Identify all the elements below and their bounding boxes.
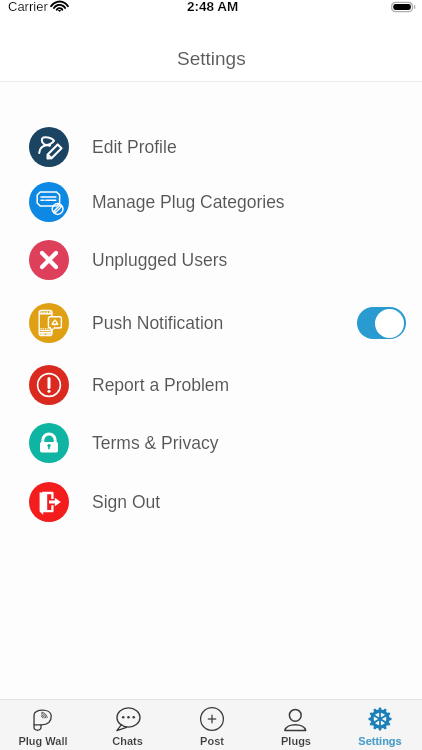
button[interactable]: Sign Out bbox=[0, 480, 422, 524]
staticText: Settings bbox=[177, 48, 246, 69]
staticText: Plugs bbox=[281, 735, 311, 747]
staticText: Settings bbox=[358, 735, 402, 747]
button[interactable]: Unplugged Users bbox=[0, 238, 422, 282]
staticText: Unplugged Users bbox=[92, 250, 228, 270]
button[interactable]: Push Notification bbox=[0, 301, 422, 345]
staticText: 2:48 AM bbox=[187, 0, 239, 14]
staticText: Manage Plug Categories bbox=[92, 192, 285, 212]
button[interactable]: Chats bbox=[85, 700, 170, 750]
button[interactable]: Edit Profile bbox=[0, 125, 422, 169]
staticText: Carrier bbox=[8, 0, 48, 14]
button[interactable]: Manage Plug Categories bbox=[0, 180, 422, 224]
staticText: Post bbox=[200, 735, 224, 747]
button[interactable]: Settings bbox=[338, 700, 422, 750]
button[interactable]: Plug Wall bbox=[0, 700, 85, 750]
button[interactable]: Post bbox=[170, 700, 254, 750]
staticText: Chats bbox=[112, 735, 143, 747]
staticText: Sign Out bbox=[92, 492, 161, 512]
button[interactable]: Push notification toggle bbox=[357, 307, 406, 339]
staticText: Edit Profile bbox=[92, 137, 177, 157]
button[interactable]: Plugs bbox=[254, 700, 338, 750]
staticText: Plug Wall bbox=[18, 735, 68, 747]
staticText: Report a Problem bbox=[92, 375, 230, 395]
button[interactable]: Report a Problem bbox=[0, 363, 422, 407]
staticText: Push Notification bbox=[92, 313, 224, 333]
staticText: Terms & Privacy bbox=[92, 433, 219, 453]
button[interactable]: Terms & Privacy bbox=[0, 421, 422, 465]
